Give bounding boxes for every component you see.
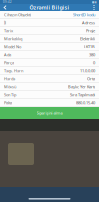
staticText: Parça	[4, 60, 14, 65]
staticText: LKT1B	[84, 44, 95, 49]
button[interactable]: More options	[89, 4, 99, 11]
staticText: ShortID kodu	[73, 12, 95, 17]
staticText: Tarix	[4, 28, 13, 33]
staticText: Sıra Tapılmadı	[70, 92, 95, 97]
staticText: Mövsü	[4, 84, 16, 89]
button[interactable]: Palta	[0, 99, 99, 107]
button[interactable]: Tarix	[0, 27, 99, 35]
staticText: Adress	[82, 20, 95, 25]
staticText: 0	[93, 60, 95, 65]
staticText: Palta	[4, 100, 12, 105]
staticText: Son Tip	[4, 92, 16, 97]
button[interactable]: Parça	[0, 59, 99, 67]
button[interactable]: Hərdə	[0, 75, 99, 83]
staticText: Elektrikli	[80, 36, 95, 41]
staticText: Özrəmli Bilgisi	[29, 4, 69, 11]
staticText: Markalılıq	[4, 36, 22, 41]
staticText: Ada	[4, 52, 11, 57]
staticText: Təqs. Hərn	[4, 68, 23, 73]
staticText: 880.0.15.40	[76, 100, 95, 105]
staticText: 380	[89, 52, 95, 57]
staticText: Başlıc Yer Kartı	[68, 84, 95, 89]
button[interactable]: Model No	[0, 43, 99, 51]
button[interactable]: Cihazın Obyekti	[0, 11, 99, 19]
button[interactable]: Ada	[0, 51, 99, 59]
staticText: 11.0.0.00	[80, 68, 95, 73]
staticText: Siparişini alma	[36, 110, 62, 116]
button[interactable]: İl	[0, 19, 99, 27]
staticText: 09:42	[3, 0, 12, 4]
staticText: Model No	[4, 44, 21, 49]
button[interactable]: Təqs. Hərn	[0, 67, 99, 75]
button[interactable]: Back	[0, 4, 10, 11]
button[interactable]: Mövsü	[0, 83, 99, 91]
button[interactable]: Markalılıq	[0, 35, 99, 43]
button[interactable]: Son Tip	[0, 91, 99, 99]
button[interactable]: Siparişini alma	[0, 107, 99, 119]
staticText: Cihazın Obyekti	[4, 12, 31, 17]
staticText: Hərdə	[4, 76, 15, 81]
staticText: Proje	[86, 28, 95, 33]
staticText: ▮▮ ▮	[92, 0, 96, 3]
staticText: İl	[4, 20, 6, 25]
staticText: Orta	[87, 76, 95, 81]
